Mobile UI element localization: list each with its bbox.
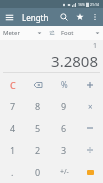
staticText: 3.2808	[3, 51, 98, 71]
staticText: 2	[35, 144, 41, 156]
button[interactable]: Multiply	[77, 95, 103, 117]
button[interactable]: 6	[51, 117, 77, 139]
staticText: 8	[35, 100, 41, 112]
button[interactable]: 9	[51, 95, 77, 117]
button[interactable]: Clear	[0, 74, 25, 95]
button[interactable]: 3	[51, 139, 77, 161]
staticText: 6	[61, 122, 67, 134]
staticText: +/-	[60, 167, 69, 177]
staticText: Length	[22, 12, 49, 23]
button[interactable]: Minus	[77, 117, 103, 139]
button[interactable]: 2	[25, 139, 51, 161]
button[interactable]: Search	[56, 9, 72, 25]
staticText: .	[11, 166, 14, 178]
staticText: 5	[35, 122, 41, 134]
staticText: 1	[3, 41, 97, 51]
button[interactable]: 1	[0, 139, 25, 161]
staticText: ×	[88, 101, 93, 112]
button[interactable]: Plus minus	[51, 161, 77, 183]
button[interactable]: Backspace	[25, 74, 51, 95]
staticText: C	[10, 79, 16, 91]
button[interactable]: 4	[0, 117, 25, 139]
staticText: Meter	[3, 29, 37, 37]
button[interactable]: Foot	[58, 26, 103, 40]
staticText: %	[61, 79, 68, 90]
button[interactable]: More options	[88, 10, 102, 24]
button[interactable]: Meter	[0, 26, 45, 40]
staticText: 1	[10, 144, 16, 156]
button[interactable]: Percent	[51, 74, 77, 95]
staticText: 7	[10, 100, 16, 112]
staticText: 4	[10, 122, 16, 134]
button[interactable]: 7	[0, 95, 25, 117]
staticText: 9	[61, 100, 67, 112]
staticText: 21:14	[90, 2, 99, 7]
button[interactable]: Equals	[77, 161, 103, 183]
button[interactable]: 0	[25, 161, 51, 183]
button[interactable]: Divide	[77, 139, 103, 161]
button[interactable]: 8	[25, 95, 51, 117]
button[interactable]: .	[0, 161, 25, 183]
staticText: 0	[35, 166, 41, 178]
button[interactable]: Open navigation drawer	[0, 8, 18, 26]
staticText: 16%	[78, 2, 85, 7]
button[interactable]: Plus	[77, 74, 103, 95]
button[interactable]: Swap units	[45, 26, 58, 40]
button[interactable]: Favorite	[72, 9, 88, 25]
staticText: Foot	[61, 29, 95, 37]
button[interactable]: 5	[25, 117, 51, 139]
staticText: 3	[61, 144, 67, 156]
